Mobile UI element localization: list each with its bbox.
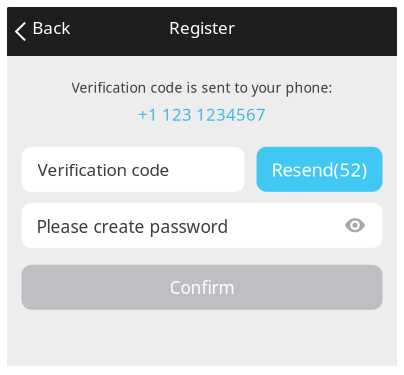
button[interactable]: Please create password — [21, 203, 382, 248]
button[interactable]: Show password — [339, 208, 370, 242]
staticText: Register — [169, 16, 235, 39]
button[interactable]: Back — [7, 7, 82, 55]
button[interactable]: Verification code — [21, 147, 244, 192]
staticText: Please create password — [36, 214, 228, 238]
staticText: Back — [32, 16, 70, 39]
button[interactable]: Resend(52) — [256, 147, 382, 192]
staticText: Verification code is sent to your phone: — [71, 78, 332, 97]
staticText: Resend(52) — [271, 157, 367, 182]
staticText: +1 123 1234567 — [138, 103, 266, 126]
button[interactable]: Confirm — [21, 265, 382, 310]
staticText: Verification code — [37, 158, 169, 181]
staticText: Confirm — [169, 275, 234, 299]
